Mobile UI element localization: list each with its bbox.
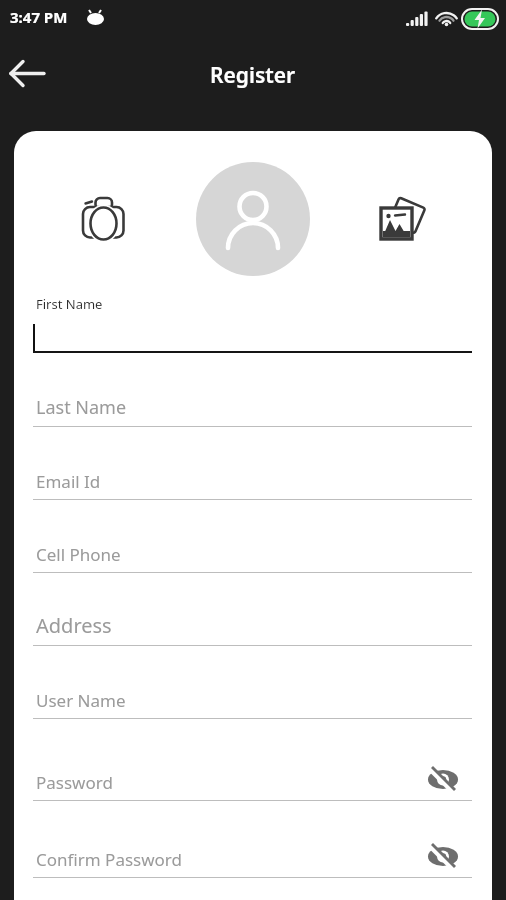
staticText: Confirm Password [36, 848, 182, 871]
button[interactable]: Password [33, 741, 472, 801]
button[interactable]: User Name [33, 659, 472, 719]
staticText: Cell Phone [36, 543, 121, 566]
staticText: First Name [36, 295, 103, 313]
staticText: Last Name [36, 395, 127, 420]
staticText: Email Id [36, 470, 101, 493]
staticText: Register [210, 61, 296, 90]
button[interactable] [79, 191, 129, 241]
staticText: User Name [36, 689, 126, 712]
button[interactable]: Address [33, 586, 472, 646]
button[interactable]: Cell Phone [33, 513, 472, 573]
button[interactable]: Email Id [33, 440, 472, 500]
button[interactable] [196, 162, 310, 276]
button[interactable] [374, 189, 430, 245]
button[interactable] [6, 53, 48, 95]
button[interactable]: Confirm Password [33, 818, 472, 878]
staticText: 3:47 PM [10, 7, 68, 27]
staticText: Address [36, 612, 112, 639]
button[interactable]: Last Name [33, 367, 472, 427]
staticText: Password [36, 771, 113, 794]
